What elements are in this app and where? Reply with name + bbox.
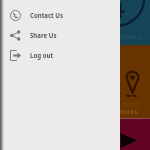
- other: Share Us: [10, 30, 21, 41]
- button[interactable]: Log out: [0, 45, 120, 65]
- staticText: Share Us: [30, 31, 57, 39]
- button[interactable]: Share Us: [0, 25, 120, 45]
- staticText: DETAILS: [115, 33, 142, 41]
- staticText: Kitchen: [123, 101, 141, 108]
- other: Log out: [10, 50, 21, 61]
- button[interactable]: Contact Us: [0, 5, 120, 25]
- staticText: MORE: [119, 108, 139, 116]
- other: Contact Us: [10, 10, 21, 21]
- staticText: Log out: [30, 51, 54, 59]
- staticText: Contact Us: [30, 11, 64, 19]
